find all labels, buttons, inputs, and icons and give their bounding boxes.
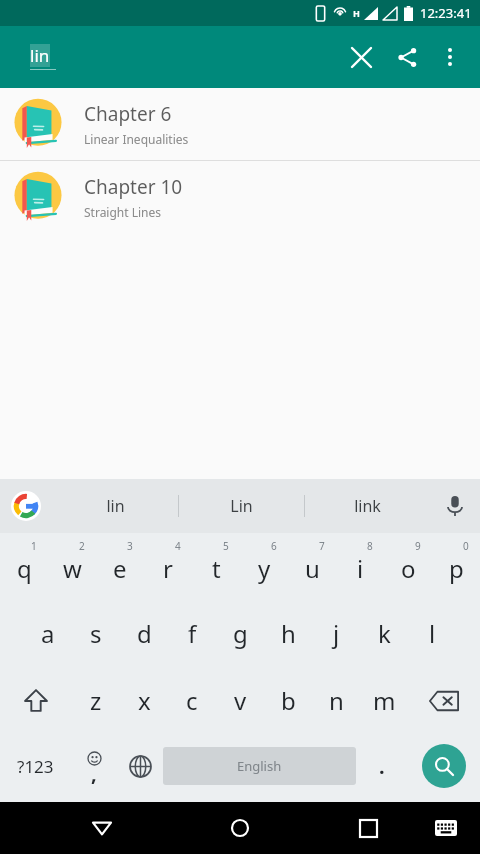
- staticText: 6: [271, 539, 277, 553]
- staticText: Lin: [230, 495, 253, 517]
- staticText: English: [237, 757, 282, 775]
- button[interactable]: k: [360, 600, 408, 667]
- button[interactable]: Change keyboard language: [117, 734, 163, 798]
- staticText: d: [137, 617, 152, 650]
- button[interactable]: Switch keyboard: [426, 808, 466, 848]
- staticText: 7: [319, 539, 325, 553]
- button[interactable]: d: [120, 600, 168, 667]
- button[interactable]: English: [163, 747, 356, 785]
- staticText: 9: [415, 539, 421, 553]
- button[interactable]: s: [72, 600, 120, 667]
- staticText: h: [281, 617, 296, 650]
- staticText: lin: [106, 495, 125, 517]
- button[interactable]: Backspace: [408, 667, 480, 734]
- staticText: n: [329, 684, 344, 717]
- button[interactable]: Emoji and comma: [71, 734, 117, 798]
- staticText: c: [186, 684, 198, 717]
- staticText: p: [449, 552, 464, 585]
- staticText: g: [233, 617, 248, 650]
- staticText: q: [17, 552, 32, 585]
- staticText: f: [188, 617, 197, 650]
- button[interactable]: 5: [192, 533, 240, 600]
- button[interactable]: Lin: [179, 479, 304, 533]
- staticText: t: [212, 552, 221, 585]
- staticText: 1: [31, 539, 37, 553]
- button[interactable]: lin: [52, 479, 178, 533]
- button[interactable]: Shift: [0, 667, 72, 734]
- button[interactable]: z: [72, 667, 120, 734]
- staticText: i: [357, 552, 364, 585]
- button[interactable]: Share: [384, 34, 430, 80]
- button[interactable]: n: [312, 667, 360, 734]
- staticText: e: [113, 552, 127, 585]
- button[interactable]: 8: [336, 533, 384, 600]
- staticText: l: [429, 617, 436, 650]
- button[interactable]: Recents: [344, 804, 392, 852]
- button[interactable]: More options: [430, 37, 470, 77]
- staticText: z: [90, 684, 102, 717]
- button[interactable]: Chapter 6: [0, 88, 480, 160]
- button[interactable]: link: [305, 479, 430, 533]
- staticText: link: [354, 495, 381, 517]
- staticText: k: [378, 617, 391, 650]
- button[interactable]: m: [360, 667, 408, 734]
- button[interactable]: Home: [216, 804, 264, 852]
- button[interactable]: ?123: [0, 734, 71, 798]
- staticText: Linear Inequalities: [84, 131, 189, 147]
- staticText: 2: [79, 539, 85, 553]
- staticText: v: [234, 684, 247, 717]
- button[interactable]: v: [216, 667, 264, 734]
- staticText: .: [379, 753, 385, 780]
- staticText: x: [138, 684, 151, 717]
- button[interactable]: l: [408, 600, 456, 667]
- button[interactable]: Search: [407, 734, 480, 798]
- staticText: 8: [367, 539, 373, 553]
- staticText: o: [401, 552, 416, 585]
- button[interactable]: h: [264, 600, 312, 667]
- button[interactable]: a: [24, 600, 72, 667]
- staticText: a: [41, 617, 55, 650]
- button[interactable]: Clear search: [338, 34, 384, 80]
- staticText: w: [63, 552, 82, 585]
- staticText: j: [333, 617, 340, 650]
- staticText: b: [281, 684, 296, 717]
- staticText: u: [305, 552, 320, 585]
- button[interactable]: 6: [240, 533, 288, 600]
- button[interactable]: Chapter 10: [0, 161, 480, 233]
- button[interactable]: 1: [0, 533, 48, 600]
- button[interactable]: .: [356, 734, 407, 798]
- staticText: 3: [127, 539, 133, 553]
- button[interactable]: j: [312, 600, 360, 667]
- button[interactable]: b: [264, 667, 312, 734]
- button[interactable]: 0: [432, 533, 480, 600]
- staticText: Straight Lines: [84, 204, 162, 220]
- staticText: 4: [175, 539, 181, 553]
- staticText: ?123: [17, 755, 54, 778]
- button[interactable]: c: [168, 667, 216, 734]
- button[interactable]: x: [120, 667, 168, 734]
- staticText: H: [353, 7, 360, 19]
- button[interactable]: g: [216, 600, 264, 667]
- staticText: m: [373, 684, 396, 717]
- button[interactable]: 3: [96, 533, 144, 600]
- button[interactable]: 9: [384, 533, 432, 600]
- staticText: 0: [463, 539, 469, 553]
- button[interactable]: f: [168, 600, 216, 667]
- button[interactable]: 2: [48, 533, 96, 600]
- staticText: 12:23:41: [420, 4, 472, 22]
- button[interactable]: Voice input: [430, 479, 480, 533]
- staticText: 5: [223, 539, 229, 553]
- button[interactable]: 7: [288, 533, 336, 600]
- button[interactable]: Google: [0, 479, 52, 533]
- staticText: Chapter 10: [84, 174, 183, 200]
- staticText: ,: [91, 760, 97, 787]
- staticText: y: [258, 552, 271, 585]
- staticText: r: [163, 552, 173, 585]
- button[interactable]: Back: [78, 804, 126, 852]
- staticText: lin: [30, 44, 50, 67]
- staticText: s: [90, 617, 102, 650]
- button[interactable]: 4: [144, 533, 192, 600]
- staticText: Chapter 6: [84, 101, 172, 127]
